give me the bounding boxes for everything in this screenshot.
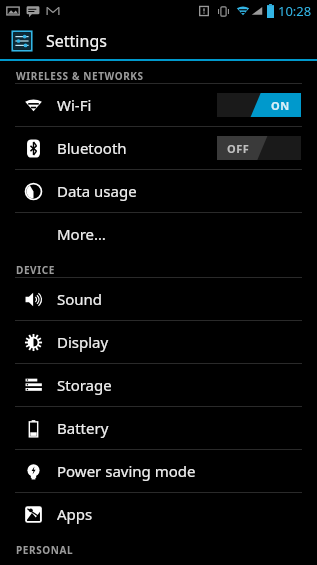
staticText: Data usage [57,181,137,201]
staticText: More… [57,224,106,244]
button[interactable]: Switch off [217,136,301,160]
staticText: OFF [227,141,250,156]
staticText: Apps [57,504,93,524]
button[interactable]: Apps [0,493,317,535]
staticText: Storage [57,375,112,395]
staticText: WIRELESS & NETWORKS [16,69,144,83]
staticText: Wi-Fi [57,95,92,115]
staticText: Bluetooth [57,138,127,158]
button[interactable]: Sound [0,278,317,320]
button[interactable]: Switch on [217,93,301,117]
button[interactable]: Settings [0,22,317,59]
staticText: ON [271,98,290,113]
button[interactable]: Storage [0,364,317,406]
button[interactable]: Data usage [0,170,317,212]
button[interactable]: Display [0,321,317,363]
staticText: Power saving mode [57,461,196,481]
staticText: 10:28 [278,2,312,20]
staticText: Battery [57,418,109,438]
button[interactable]: Power saving mode [0,450,317,492]
staticText: DEVICE [16,263,55,277]
button[interactable]: More… [0,213,317,255]
button[interactable]: Wi-Fi [0,84,317,126]
button[interactable]: Battery [0,407,317,449]
staticText: PERSONAL [16,543,74,557]
staticText: Sound [57,289,103,309]
button[interactable]: Bluetooth [0,127,317,169]
staticText: Display [57,332,109,352]
staticText: Settings [46,30,107,52]
